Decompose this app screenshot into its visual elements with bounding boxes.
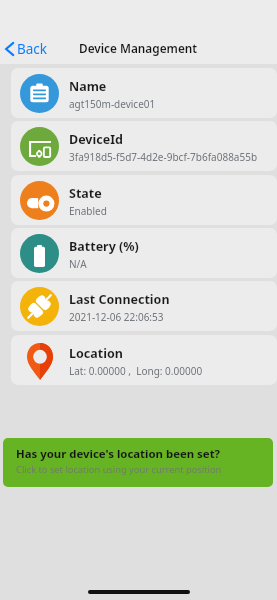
- staticText: Battery (%): [69, 238, 139, 255]
- staticText: Lat: 0.00000 , Long: 0.00000: [69, 364, 203, 378]
- button[interactable]: Last Connection: [11, 281, 277, 331]
- staticText: DeviceId: [69, 131, 123, 148]
- staticText: 3fa918d5-f5d7-4d2e-9bcf-7b6fa088a55b: [69, 150, 258, 164]
- staticText: State: [69, 185, 102, 202]
- button[interactable]: DeviceId: [11, 121, 277, 171]
- staticText: Enabled: [69, 204, 107, 218]
- button[interactable]: Back: [0, 34, 58, 64]
- staticText: 2021-12-06 22:06:53: [69, 310, 164, 324]
- staticText: agt150m-device01: [69, 97, 156, 111]
- staticText: Device Management: [79, 40, 198, 56]
- button[interactable]: Has your device's location been set?: [3, 438, 273, 487]
- staticText: Name: [69, 78, 107, 95]
- button[interactable]: Battery (%): [11, 228, 277, 278]
- staticText: N/A: [69, 257, 87, 271]
- staticText: Back: [17, 40, 48, 58]
- button[interactable]: State: [11, 175, 277, 225]
- staticText: Has your device's location been set?: [16, 446, 221, 462]
- button[interactable]: Location: [11, 335, 277, 385]
- staticText: Location: [69, 345, 123, 362]
- button[interactable]: Name: [11, 68, 277, 118]
- staticText: Last Connection: [69, 291, 170, 308]
- staticText: Click to set location using your current…: [16, 463, 222, 476]
